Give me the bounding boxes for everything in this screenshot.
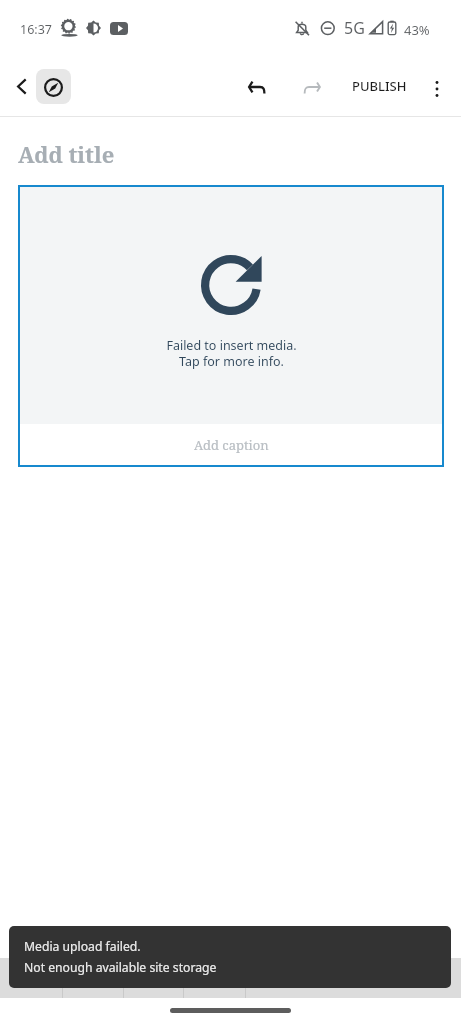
staticText: 43% xyxy=(404,21,430,39)
button[interactable]: Italic xyxy=(62,958,123,998)
staticText: Not enough available site storage xyxy=(24,959,217,976)
button[interactable]: Redo xyxy=(294,70,329,105)
staticText: 5G xyxy=(344,17,365,39)
button[interactable]: Image xyxy=(184,958,245,998)
button[interactable]: Link xyxy=(122,958,183,998)
button[interactable]: PUBLISH xyxy=(344,69,415,103)
staticText: Add caption xyxy=(194,436,269,454)
button[interactable]: Preview site xyxy=(36,69,71,104)
button[interactable]: Back xyxy=(5,69,40,104)
staticText: PUBLISH xyxy=(352,77,407,95)
button[interactable]: Bold xyxy=(1,958,62,998)
staticText: 16:37 xyxy=(20,21,52,38)
button[interactable]: More options xyxy=(420,70,454,104)
button[interactable]: Media upload failed. xyxy=(9,926,451,988)
button[interactable]: Failed to insert media. Tap for more inf… xyxy=(18,185,444,467)
staticText: Add title xyxy=(18,139,115,169)
button[interactable]: Undo xyxy=(239,70,274,105)
staticText: Media upload failed. xyxy=(24,938,141,955)
staticText: Failed to insert media. Tap for more inf… xyxy=(166,337,297,369)
